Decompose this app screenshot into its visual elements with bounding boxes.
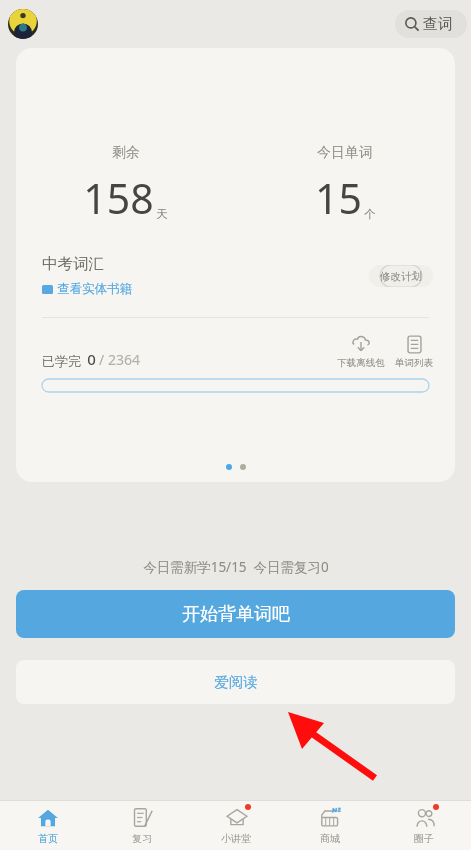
staticText: 今日单词 [317, 144, 373, 162]
staticText: 爱阅读 [214, 673, 258, 691]
staticText: 商城 [320, 832, 340, 845]
button[interactable]: 下载离线包 [337, 334, 385, 369]
button[interactable]: 单词列表 [395, 334, 433, 369]
staticText: 下载离线包 [337, 357, 385, 369]
staticText: / 2364 [99, 350, 140, 369]
button[interactable]: 查看实体书籍 [42, 281, 132, 297]
staticText: 圈子 [414, 832, 434, 845]
button[interactable]: 首页 [0, 801, 95, 850]
staticText: 15 [315, 170, 362, 226]
staticText: 小讲堂 [221, 832, 251, 845]
button[interactable]: 复习 [95, 801, 189, 850]
button[interactable]: 圈子 [377, 801, 471, 850]
button[interactable]: 爱阅读 [16, 660, 455, 704]
staticText: 中考词汇 [42, 254, 104, 274]
staticText: 单词列表 [395, 357, 433, 369]
staticText: 已学完 [42, 353, 81, 369]
staticText: 开始背单词吧 [182, 603, 290, 626]
staticText: 天 [156, 207, 168, 221]
button[interactable]: 开始背单词吧 [16, 590, 455, 638]
button[interactable]: 商城 [283, 801, 377, 850]
staticText: 查看实体书籍 [57, 281, 132, 297]
staticText: 剩余 [112, 144, 140, 162]
staticText: 复习 [132, 832, 152, 845]
staticText: 首页 [38, 832, 58, 845]
staticText: 0 [87, 349, 96, 369]
staticText: 个 [364, 207, 376, 221]
button[interactable]: 修改计划 [369, 265, 433, 287]
button[interactable]: Profile [8, 9, 38, 39]
button[interactable]: 查词 [395, 10, 467, 38]
button[interactable]: 小讲堂 [189, 801, 283, 850]
staticText: 修改计划 [380, 270, 422, 283]
staticText: 查词 [423, 15, 453, 34]
staticText: 今日需新学15/15 今日需复习0 [143, 558, 329, 576]
staticText: 158 [83, 170, 154, 226]
